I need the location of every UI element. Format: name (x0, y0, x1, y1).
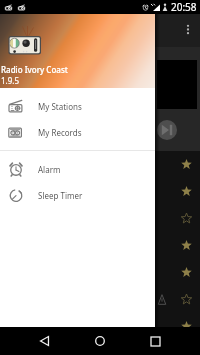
button[interactable] (0, 205, 200, 232)
button[interactable] (0, 151, 200, 178)
staticText: 1.9.5 (1, 75, 20, 86)
button[interactable] (0, 259, 200, 286)
staticText: My Stations (38, 101, 82, 112)
staticText: Sleep Timer (38, 190, 83, 201)
button[interactable]: More options (179, 22, 197, 40)
button[interactable] (0, 178, 200, 205)
staticText: Radio Ivory Coast (1, 64, 68, 75)
button[interactable]: Alarm (0, 156, 155, 182)
button[interactable] (0, 313, 200, 340)
button[interactable]: Recent apps (139, 327, 171, 355)
button[interactable]: My Stations (0, 93, 155, 119)
button[interactable] (0, 232, 200, 259)
button[interactable]: Back (28, 327, 60, 355)
button[interactable]: Home (84, 327, 116, 355)
button[interactable] (0, 286, 200, 313)
staticText: Alarm (38, 164, 61, 175)
button[interactable]: My Records (0, 119, 155, 145)
staticText: My Records (38, 127, 82, 138)
staticText: 20:58 (171, 0, 197, 14)
button[interactable]: Play next (157, 120, 177, 140)
button[interactable]: Sleep Timer (0, 182, 155, 208)
